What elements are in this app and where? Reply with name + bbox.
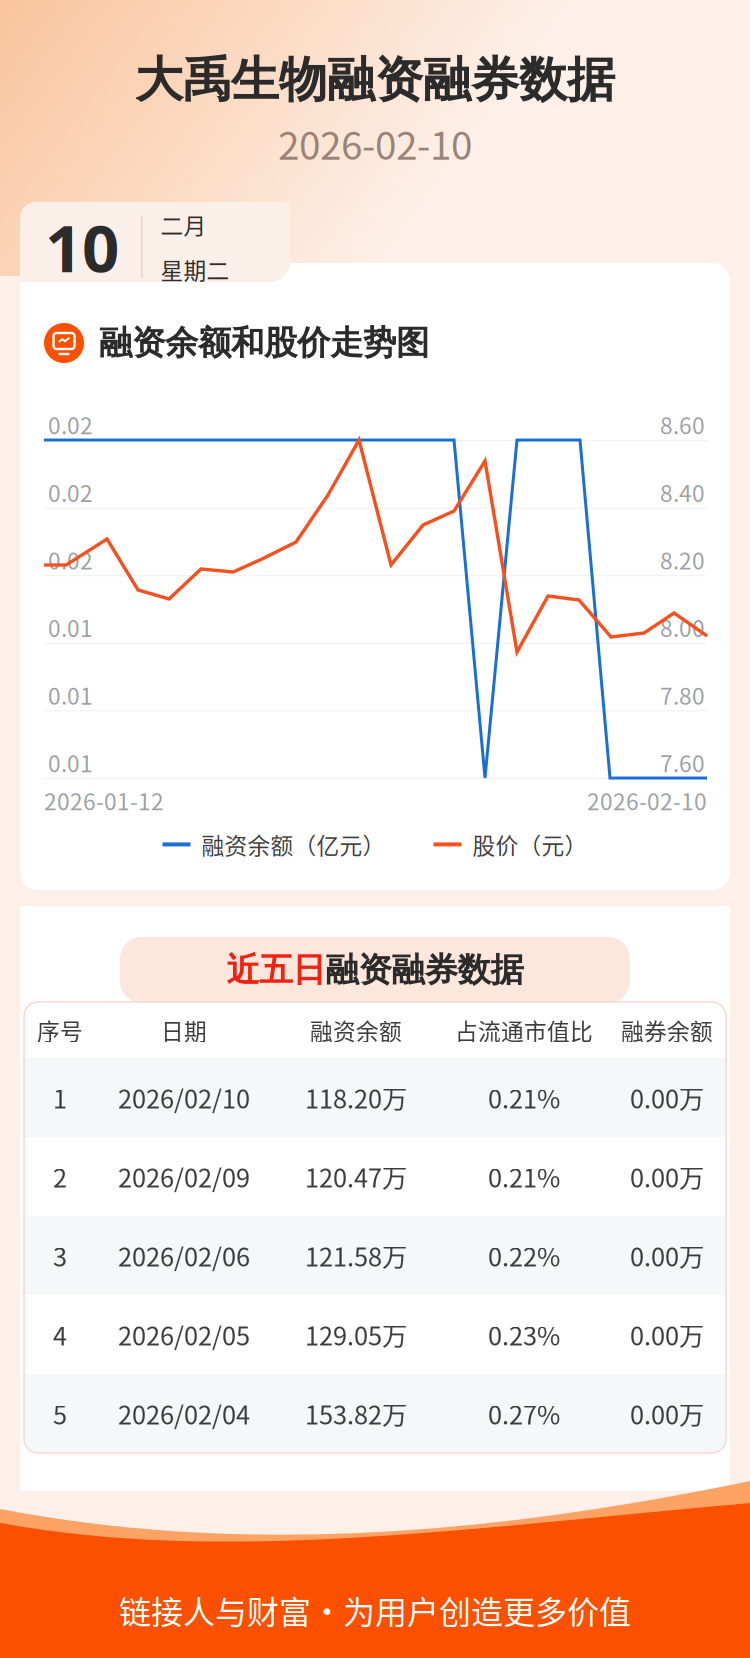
staticText: 大禹生物融资融券数据 bbox=[135, 50, 615, 110]
staticText: 融资余额和股价走势图 bbox=[99, 322, 429, 364]
staticText: 3 bbox=[53, 1237, 67, 1274]
staticText: 融资融券数据 bbox=[325, 949, 523, 991]
staticText: 0.02 bbox=[48, 408, 93, 441]
staticText: 2 bbox=[53, 1158, 67, 1195]
staticText: 0.01 bbox=[48, 746, 93, 779]
staticText: 0.00万 bbox=[630, 1158, 704, 1195]
staticText: 0.00万 bbox=[630, 1079, 704, 1116]
staticText: 8.40 bbox=[660, 476, 705, 508]
staticText: 0.00万 bbox=[630, 1395, 704, 1432]
staticText: 120.47万 bbox=[305, 1158, 407, 1195]
staticText: 0.00万 bbox=[630, 1237, 704, 1274]
staticText: 0.02 bbox=[48, 476, 93, 508]
staticText: 0.23% bbox=[488, 1316, 560, 1353]
staticText: 占流通市值比 bbox=[455, 1014, 593, 1046]
staticText: 2026/02/06 bbox=[118, 1237, 250, 1274]
staticText: 2026/02/09 bbox=[118, 1158, 250, 1195]
staticText: 5 bbox=[53, 1395, 67, 1432]
staticText: 8.00 bbox=[660, 611, 705, 644]
staticText: 118.20万 bbox=[305, 1079, 407, 1116]
staticText: 0.21% bbox=[488, 1079, 560, 1116]
staticText: 7.60 bbox=[660, 746, 705, 779]
staticText: 二月 bbox=[160, 208, 206, 241]
staticText: 0.21% bbox=[488, 1158, 560, 1195]
staticText: 129.05万 bbox=[305, 1316, 407, 1353]
staticText: 0.22% bbox=[488, 1237, 560, 1274]
staticText: 10 bbox=[45, 202, 119, 291]
staticText: 2026-01-12 bbox=[44, 784, 164, 817]
staticText: 7.80 bbox=[660, 678, 705, 711]
staticText: 融资余额 bbox=[310, 1014, 402, 1046]
staticText: 153.82万 bbox=[305, 1395, 407, 1432]
staticText: 121.58万 bbox=[305, 1237, 407, 1274]
staticText: 8.20 bbox=[660, 543, 705, 576]
staticText: 链接人与财富·为用户创造更多价值 bbox=[119, 1587, 631, 1633]
staticText: 0.00万 bbox=[630, 1316, 704, 1353]
staticText: 0.01 bbox=[48, 678, 93, 711]
staticText: 2026-02-10 bbox=[278, 115, 472, 171]
staticText: 2026/02/04 bbox=[118, 1395, 250, 1432]
staticText: 融券余额 bbox=[621, 1014, 713, 1046]
staticText: 2026/02/05 bbox=[118, 1316, 250, 1353]
staticText: 序号 bbox=[37, 1014, 83, 1046]
staticText: 1 bbox=[53, 1079, 67, 1116]
staticText: 融资余额（亿元） bbox=[201, 828, 385, 861]
staticText: 0.27% bbox=[488, 1395, 560, 1432]
staticText: 股价（元） bbox=[472, 828, 587, 861]
staticText: 8.60 bbox=[660, 408, 705, 441]
staticText: 4 bbox=[53, 1316, 67, 1353]
staticText: 0.01 bbox=[48, 611, 93, 644]
staticText: 星期二 bbox=[160, 253, 229, 286]
staticText: 0.02 bbox=[48, 543, 93, 576]
staticText: 日期 bbox=[161, 1014, 207, 1046]
staticText: 2026-02-10 bbox=[587, 784, 707, 817]
staticText: 2026/02/10 bbox=[118, 1079, 250, 1116]
staticText: 近五日 bbox=[226, 949, 325, 991]
